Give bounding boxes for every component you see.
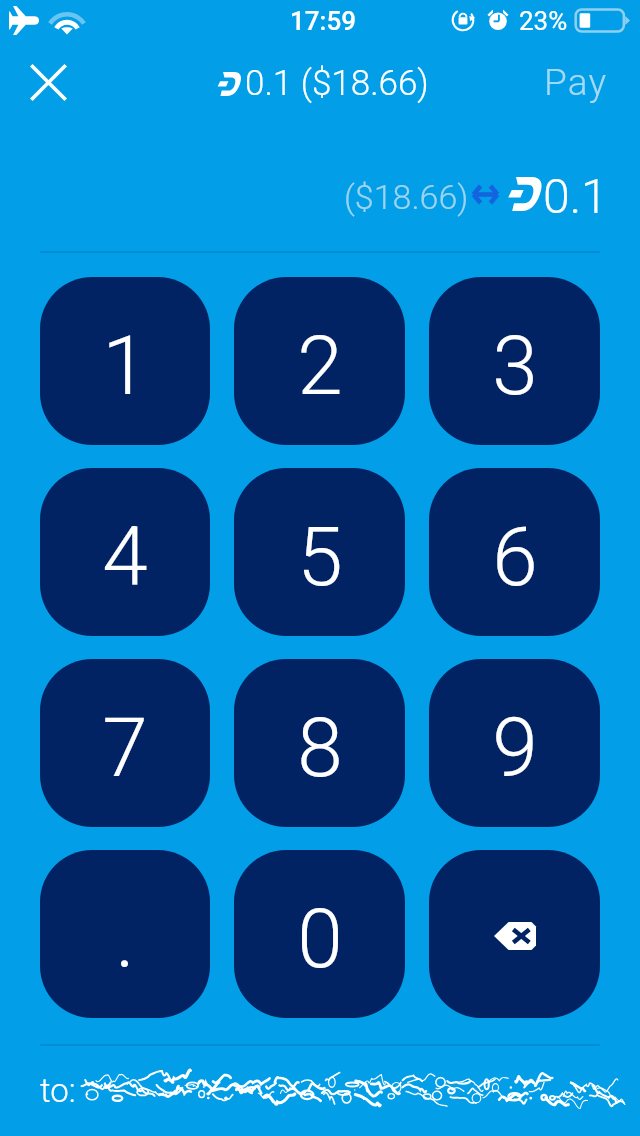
staticText: 8 bbox=[297, 700, 343, 796]
staticText: 23% bbox=[519, 6, 568, 36]
staticText: 5 bbox=[297, 509, 343, 605]
button[interactable]: . bbox=[40, 850, 210, 1018]
staticText: 17:59 bbox=[290, 6, 356, 36]
button[interactable]: 2 bbox=[234, 277, 405, 445]
button[interactable]: 3 bbox=[429, 277, 600, 445]
staticText: 0.1 bbox=[543, 168, 608, 224]
button[interactable]: 4 bbox=[40, 468, 210, 636]
button[interactable]: 7 bbox=[40, 659, 210, 827]
staticText: 9 bbox=[492, 700, 538, 796]
button[interactable]: 6 bbox=[429, 468, 600, 636]
button[interactable]: 8 bbox=[234, 659, 405, 827]
staticText: 6 bbox=[492, 509, 538, 605]
staticText: 3 bbox=[492, 318, 538, 414]
button[interactable]: Pay bbox=[544, 61, 608, 104]
staticText: Pay bbox=[544, 61, 608, 104]
button[interactable]: Backspace bbox=[429, 850, 600, 1018]
staticText: ($18.66) bbox=[344, 177, 469, 217]
staticText: 0 bbox=[297, 891, 343, 987]
button[interactable]: 0 bbox=[234, 850, 405, 1018]
staticText: 1 bbox=[102, 318, 148, 414]
staticText: 2 bbox=[297, 318, 343, 414]
button[interactable]: Close bbox=[22, 56, 75, 109]
staticText: 0.1 ($18.66) bbox=[245, 63, 429, 104]
button[interactable]: 9 bbox=[429, 659, 600, 827]
staticText: 7 bbox=[102, 700, 148, 796]
button[interactable]: 5 bbox=[234, 468, 405, 636]
button[interactable]: 1 bbox=[40, 277, 210, 445]
staticText: to: bbox=[40, 1071, 76, 1110]
staticText: . bbox=[115, 891, 135, 987]
staticText: 4 bbox=[102, 509, 148, 605]
